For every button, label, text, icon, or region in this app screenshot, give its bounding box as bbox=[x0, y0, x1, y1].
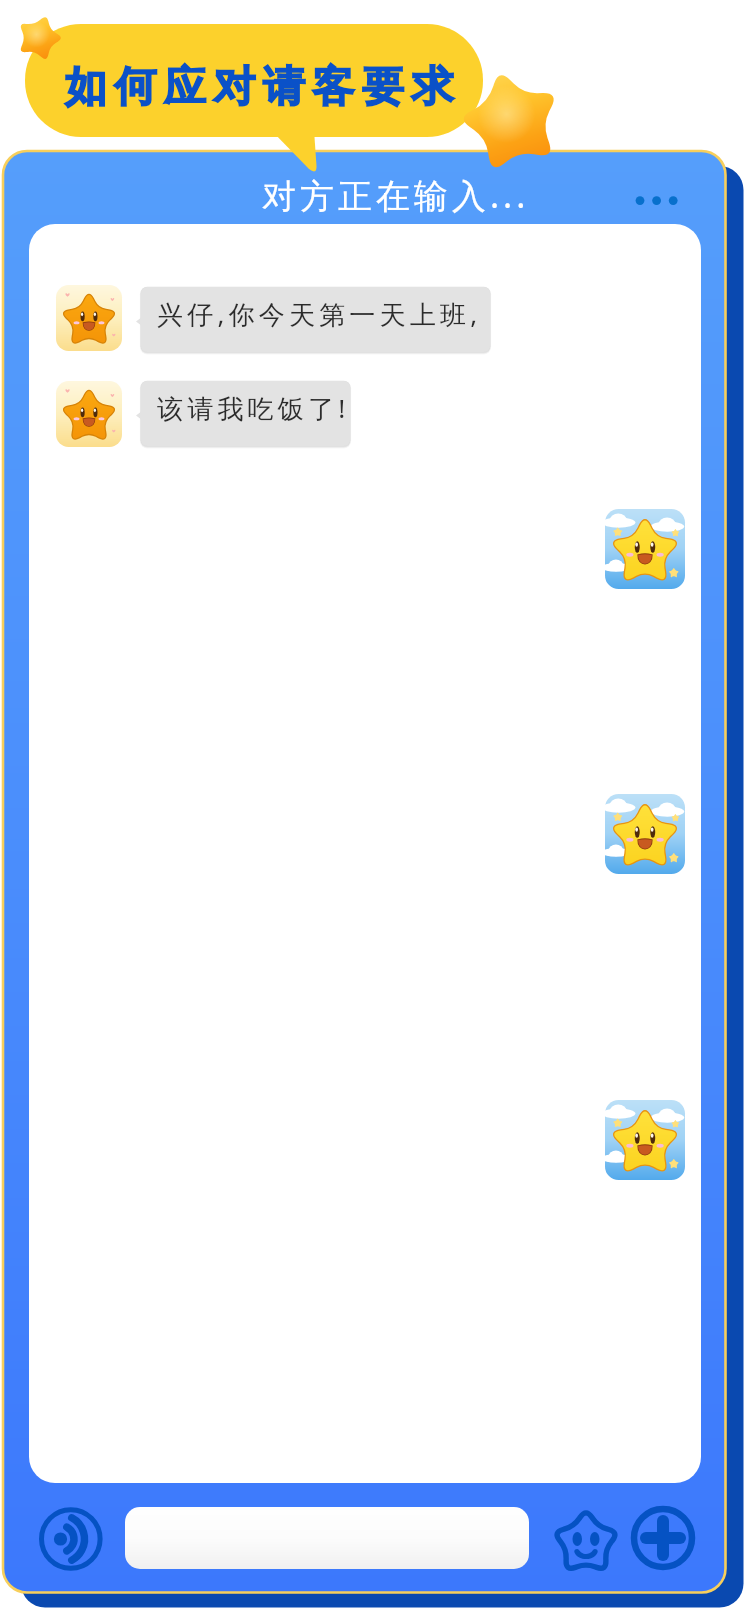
staticText: 如何应对请客要求 bbox=[61, 61, 457, 114]
button[interactable]: Sticker bbox=[605, 794, 685, 874]
button[interactable]: Voice message bbox=[39, 1507, 103, 1571]
button[interactable]: Sticker bbox=[605, 509, 685, 589]
button[interactable]: Message input bbox=[125, 1507, 529, 1569]
button[interactable]: More bbox=[624, 180, 690, 222]
button[interactable]: 如何应对请客要求 bbox=[25, 24, 483, 137]
button[interactable]: 兴仔,你今天第一天上班, bbox=[56, 285, 490, 352]
button[interactable]: Sticker bbox=[605, 1100, 685, 1180]
button[interactable]: Emoji bbox=[549, 1506, 623, 1580]
staticText: 对方正在输入... bbox=[262, 172, 530, 218]
button[interactable]: 对方正在输入... bbox=[240, 168, 540, 222]
button[interactable]: More options bbox=[631, 1506, 695, 1570]
button[interactable]: 该请我吃饭了! bbox=[56, 381, 350, 447]
staticText: 该请我吃饭了! bbox=[157, 390, 350, 426]
staticText: 兴仔,你今天第一天上班, bbox=[157, 296, 482, 332]
